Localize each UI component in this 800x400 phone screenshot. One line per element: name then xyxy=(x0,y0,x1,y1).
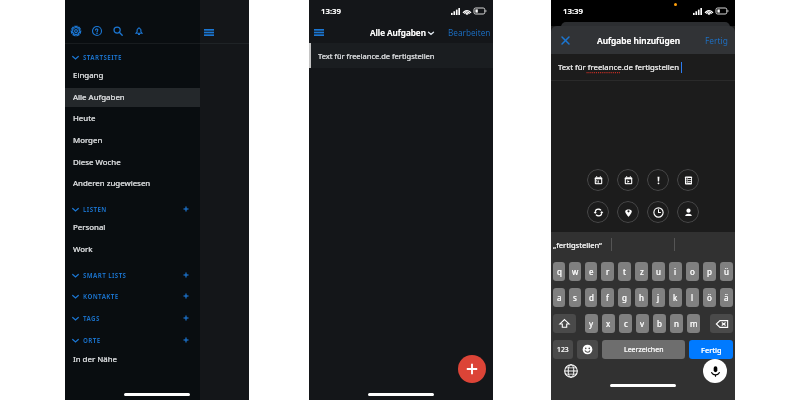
button[interactable]: Settings xyxy=(65,20,86,42)
button[interactable]: y xyxy=(585,314,598,333)
button[interactable]: Location xyxy=(617,201,639,223)
staticText: STARTSEITE xyxy=(83,53,122,61)
button[interactable]: Search xyxy=(107,20,128,42)
button[interactable]: ö xyxy=(703,288,716,307)
staticText: v xyxy=(640,318,645,329)
button[interactable]: SMART LISTS xyxy=(65,266,200,284)
staticText: LISTEN xyxy=(83,205,107,213)
staticText: KONTAKTE xyxy=(83,292,119,300)
button[interactable]: Change keyboard language xyxy=(562,362,580,380)
staticText: d xyxy=(589,292,594,303)
staticText: o xyxy=(690,266,695,277)
staticText: q xyxy=(557,266,562,277)
button[interactable]: KONTAKTE xyxy=(65,287,200,305)
button[interactable]: Add to LISTEN xyxy=(179,202,193,216)
button[interactable]: Add to ORTE xyxy=(179,333,193,347)
staticText: e xyxy=(589,266,594,277)
button[interactable]: Shift xyxy=(553,314,576,333)
button[interactable]: Diese Woche xyxy=(65,153,200,172)
button[interactable]: Add task xyxy=(458,355,486,383)
button[interactable]: Open navigation menu xyxy=(314,24,332,40)
staticText: r xyxy=(606,266,610,277)
button[interactable]: Reminder xyxy=(617,169,639,191)
button[interactable]: s xyxy=(569,288,581,307)
button[interactable]: Due date xyxy=(587,169,609,191)
staticText: t xyxy=(623,266,626,277)
button[interactable]: t xyxy=(618,262,631,281)
button[interactable]: Repeat xyxy=(587,201,609,223)
button[interactable]: Personal xyxy=(65,218,200,237)
button[interactable]: Assign xyxy=(677,201,699,223)
button[interactable]: c xyxy=(619,314,632,333)
button[interactable]: e xyxy=(585,262,597,281)
button[interactable]: ORTE xyxy=(65,331,200,349)
button[interactable]: Open navigation menu xyxy=(198,24,220,40)
button[interactable]: Priority xyxy=(647,169,669,191)
button[interactable]: Dictate xyxy=(703,359,727,383)
button[interactable]: Eingang xyxy=(65,66,200,85)
button[interactable]: b xyxy=(653,314,666,333)
button[interactable]: m xyxy=(687,314,700,333)
button[interactable]: Help xyxy=(86,20,107,42)
button[interactable]: Notifications xyxy=(128,20,149,42)
button[interactable]: p xyxy=(703,262,716,281)
button[interactable]: LISTEN xyxy=(65,200,200,218)
button[interactable]: q xyxy=(553,262,565,281)
button[interactable]: x xyxy=(602,314,615,333)
button[interactable]: ü xyxy=(720,262,733,281)
button[interactable]: Fertig xyxy=(705,35,728,46)
staticText: Heute xyxy=(73,113,96,124)
button[interactable]: Heute xyxy=(65,109,200,128)
button[interactable]: ä xyxy=(720,288,733,307)
staticText: Personal xyxy=(73,222,106,233)
button[interactable]: k xyxy=(669,288,682,307)
button[interactable]: Bearbeiten xyxy=(448,27,491,38)
button[interactable]: Notes xyxy=(677,169,699,191)
button[interactable]: u xyxy=(652,262,665,281)
button[interactable]: Add to TAGS xyxy=(179,311,193,325)
button[interactable]: Close xyxy=(557,32,573,48)
button[interactable]: Anderen zugewiesen xyxy=(65,174,200,193)
button[interactable]: Backspace xyxy=(710,314,733,333)
button[interactable]: Text für freelance.de fertigstellen xyxy=(309,43,493,68)
button[interactable]: j xyxy=(652,288,665,307)
button[interactable]: h xyxy=(635,288,648,307)
button[interactable]: Add to SMART LISTS xyxy=(179,268,193,282)
button[interactable]: l xyxy=(686,288,699,307)
button[interactable]: g xyxy=(618,288,631,307)
button[interactable]: Time xyxy=(647,201,669,223)
staticText: „fertigstellen“ xyxy=(553,240,602,250)
staticText: ö xyxy=(707,292,712,303)
button[interactable]: z xyxy=(635,262,648,281)
button[interactable]: STARTSEITE xyxy=(65,48,200,66)
staticText: l xyxy=(691,292,694,303)
button[interactable]: Alle Aufgaben xyxy=(370,27,434,38)
staticText: y xyxy=(589,318,594,329)
button[interactable]: Morgen xyxy=(65,131,200,150)
button[interactable]: v xyxy=(636,314,649,333)
staticText: k xyxy=(673,292,678,303)
button[interactable]: a xyxy=(553,288,565,307)
button[interactable]: TAGS xyxy=(65,309,200,327)
button[interactable]: d xyxy=(585,288,597,307)
staticText: Text für freelance.de fertigstellen xyxy=(558,62,680,73)
button[interactable]: Work xyxy=(65,240,200,259)
button[interactable]: Alle Aufgaben xyxy=(65,88,200,107)
button[interactable]: In der Nähe xyxy=(65,350,200,369)
button[interactable]: r xyxy=(601,262,614,281)
button[interactable]: o xyxy=(686,262,699,281)
staticText: b xyxy=(657,318,662,329)
button[interactable]: Fertig xyxy=(689,340,733,359)
button[interactable]: n xyxy=(670,314,683,333)
staticText: g xyxy=(622,292,627,303)
button[interactable]: Add to KONTAKTE xyxy=(179,289,193,303)
button[interactable]: 123 xyxy=(553,340,573,359)
staticText: i xyxy=(674,266,677,277)
button[interactable]: Emoji xyxy=(577,340,598,359)
button[interactable]: Leerzeichen xyxy=(602,340,685,359)
button[interactable]: f xyxy=(601,288,614,307)
button[interactable]: w xyxy=(569,262,581,281)
staticText: Morgen xyxy=(73,135,103,146)
button[interactable]: i xyxy=(669,262,682,281)
staticText: Fertig xyxy=(705,35,728,46)
